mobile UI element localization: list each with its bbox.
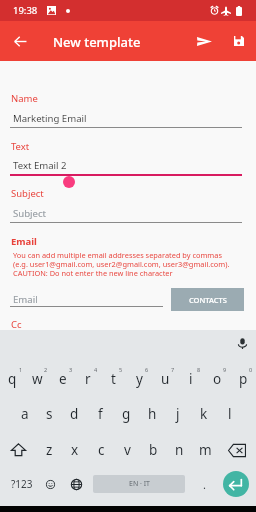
button[interactable]: h — [139, 398, 165, 430]
button[interactable]: t — [100, 363, 126, 395]
staticText: Cc — [11, 318, 22, 331]
button[interactable]: u — [152, 363, 178, 395]
staticText: b — [149, 441, 158, 459]
staticText: Text — [11, 140, 30, 153]
staticText: EN · IT — [129, 479, 150, 489]
button[interactable]: Emoji — [40, 468, 61, 500]
button[interactable]: i — [178, 363, 204, 395]
button[interactable]: Shift — [0, 434, 37, 466]
staticText: i — [189, 370, 193, 388]
button[interactable]: p — [230, 363, 256, 395]
button[interactable]: ?123 — [4, 468, 40, 500]
staticText: n — [175, 441, 184, 459]
staticText: p — [239, 370, 248, 388]
staticText: g — [122, 405, 131, 423]
staticText: 2 — [44, 366, 48, 373]
button[interactable]: f — [87, 398, 113, 430]
staticText: k — [200, 405, 208, 423]
staticText: 3 — [69, 366, 73, 373]
button[interactable]: b — [140, 434, 166, 466]
staticText: a — [21, 405, 29, 423]
button[interactable]: l — [217, 398, 243, 430]
staticText: . — [203, 477, 206, 492]
button[interactable]: n — [166, 434, 192, 466]
button[interactable]: Backspace — [218, 434, 256, 466]
staticText: 6 — [145, 366, 149, 373]
button[interactable]: y — [126, 363, 152, 395]
staticText: CONTACTS — [189, 295, 227, 305]
staticText: Name — [11, 92, 38, 105]
staticText: y — [136, 370, 143, 388]
button[interactable]: w — [25, 363, 50, 395]
staticText: 1 — [19, 366, 23, 373]
staticText: o — [213, 370, 222, 388]
staticText: x — [71, 441, 79, 459]
button[interactable]: Back — [8, 21, 32, 61]
button[interactable]: EN · IT — [93, 475, 185, 493]
button[interactable]: CONTACTS — [171, 288, 244, 311]
button[interactable]: r — [75, 363, 100, 395]
button[interactable]: j — [165, 398, 191, 430]
staticText: Text Email 2 — [13, 159, 67, 172]
staticText: h — [148, 405, 157, 423]
staticText: f — [98, 405, 103, 423]
staticText: 5 — [119, 366, 123, 373]
button[interactable]: Enter — [223, 471, 249, 497]
button[interactable]: Save — [226, 21, 252, 61]
staticText: Email — [11, 235, 37, 248]
staticText: Subject — [13, 207, 47, 220]
staticText: New template — [53, 33, 141, 51]
staticText: z — [46, 441, 53, 459]
staticText: u — [161, 370, 170, 388]
button[interactable]: k — [191, 398, 217, 430]
staticText: 4 — [94, 366, 98, 373]
button[interactable]: g — [113, 398, 139, 430]
button[interactable]: Language — [65, 468, 87, 500]
staticText: v — [124, 441, 131, 459]
staticText: 19:38 — [13, 4, 38, 17]
button[interactable]: d — [62, 398, 87, 430]
staticText: e — [59, 370, 67, 388]
staticText: 9 — [223, 366, 227, 373]
staticText: m — [199, 441, 212, 459]
staticText: s — [46, 405, 53, 423]
button[interactable]: a — [12, 398, 37, 430]
staticText: r — [85, 370, 91, 388]
staticText: d — [70, 405, 79, 423]
staticText: Subject — [11, 187, 44, 200]
staticText: q — [8, 370, 17, 388]
button[interactable]: Send — [189, 21, 220, 61]
staticText: 7 — [171, 366, 175, 373]
staticText: j — [176, 405, 180, 423]
button[interactable]: z — [37, 434, 62, 466]
button[interactable]: q — [0, 363, 25, 395]
button[interactable]: e — [50, 363, 75, 395]
staticText: 0 — [249, 366, 253, 373]
button[interactable]: s — [37, 398, 62, 430]
staticText: 8 — [197, 366, 201, 373]
staticText: t — [111, 370, 116, 388]
button[interactable]: c — [88, 434, 114, 466]
button[interactable]: . — [194, 468, 214, 500]
staticText: c — [98, 441, 105, 459]
button[interactable]: m — [192, 434, 218, 466]
staticText: l — [228, 405, 232, 423]
button[interactable]: x — [62, 434, 88, 466]
button[interactable]: o — [204, 363, 230, 395]
button[interactable]: Voice input — [232, 333, 252, 353]
button[interactable]: v — [114, 434, 140, 466]
staticText: ?123 — [11, 477, 33, 491]
staticText: Email — [13, 293, 38, 306]
staticText: w — [32, 370, 43, 388]
staticText: Marketing Email — [13, 112, 87, 125]
staticText: You can add multiple email addresses sep… — [13, 250, 230, 278]
